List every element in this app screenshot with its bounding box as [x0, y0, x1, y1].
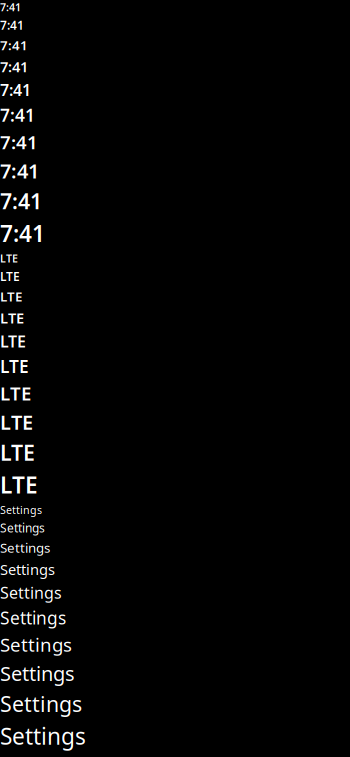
staticText: LTE [0, 355, 29, 378]
staticText: 7:41 [0, 17, 24, 33]
staticText: Settings [0, 606, 66, 629]
staticText: 7:41 [0, 79, 31, 100]
staticText: 7:41 [0, 103, 35, 126]
staticText: 7:41 [0, 187, 42, 215]
staticText: LTE [0, 268, 20, 284]
staticText: 7:41 [0, 36, 28, 54]
staticText: 7:41 [0, 218, 45, 248]
staticText: LTE [0, 251, 18, 265]
staticText: Settings [0, 520, 45, 536]
staticText: LTE [0, 381, 31, 406]
staticText: LTE [0, 470, 38, 500]
staticText: Settings [0, 559, 55, 579]
staticText: Settings [0, 539, 50, 556]
staticText: 7:41 [0, 157, 39, 184]
staticText: Settings [0, 503, 42, 517]
staticText: 7:41 [0, 57, 28, 76]
staticText: 7:41 [0, 130, 38, 154]
staticText: LTE [0, 331, 26, 352]
staticText: Settings [0, 582, 62, 603]
staticText: Settings [0, 690, 82, 718]
staticText: LTE [0, 308, 24, 328]
staticText: LTE [0, 438, 35, 466]
staticText: LTE [0, 287, 22, 305]
staticText: LTE [0, 409, 33, 435]
staticText: 7:41 [0, 0, 21, 14]
staticText: Settings [0, 632, 72, 657]
staticText: Settings [0, 660, 75, 687]
staticText: Settings [0, 721, 86, 751]
